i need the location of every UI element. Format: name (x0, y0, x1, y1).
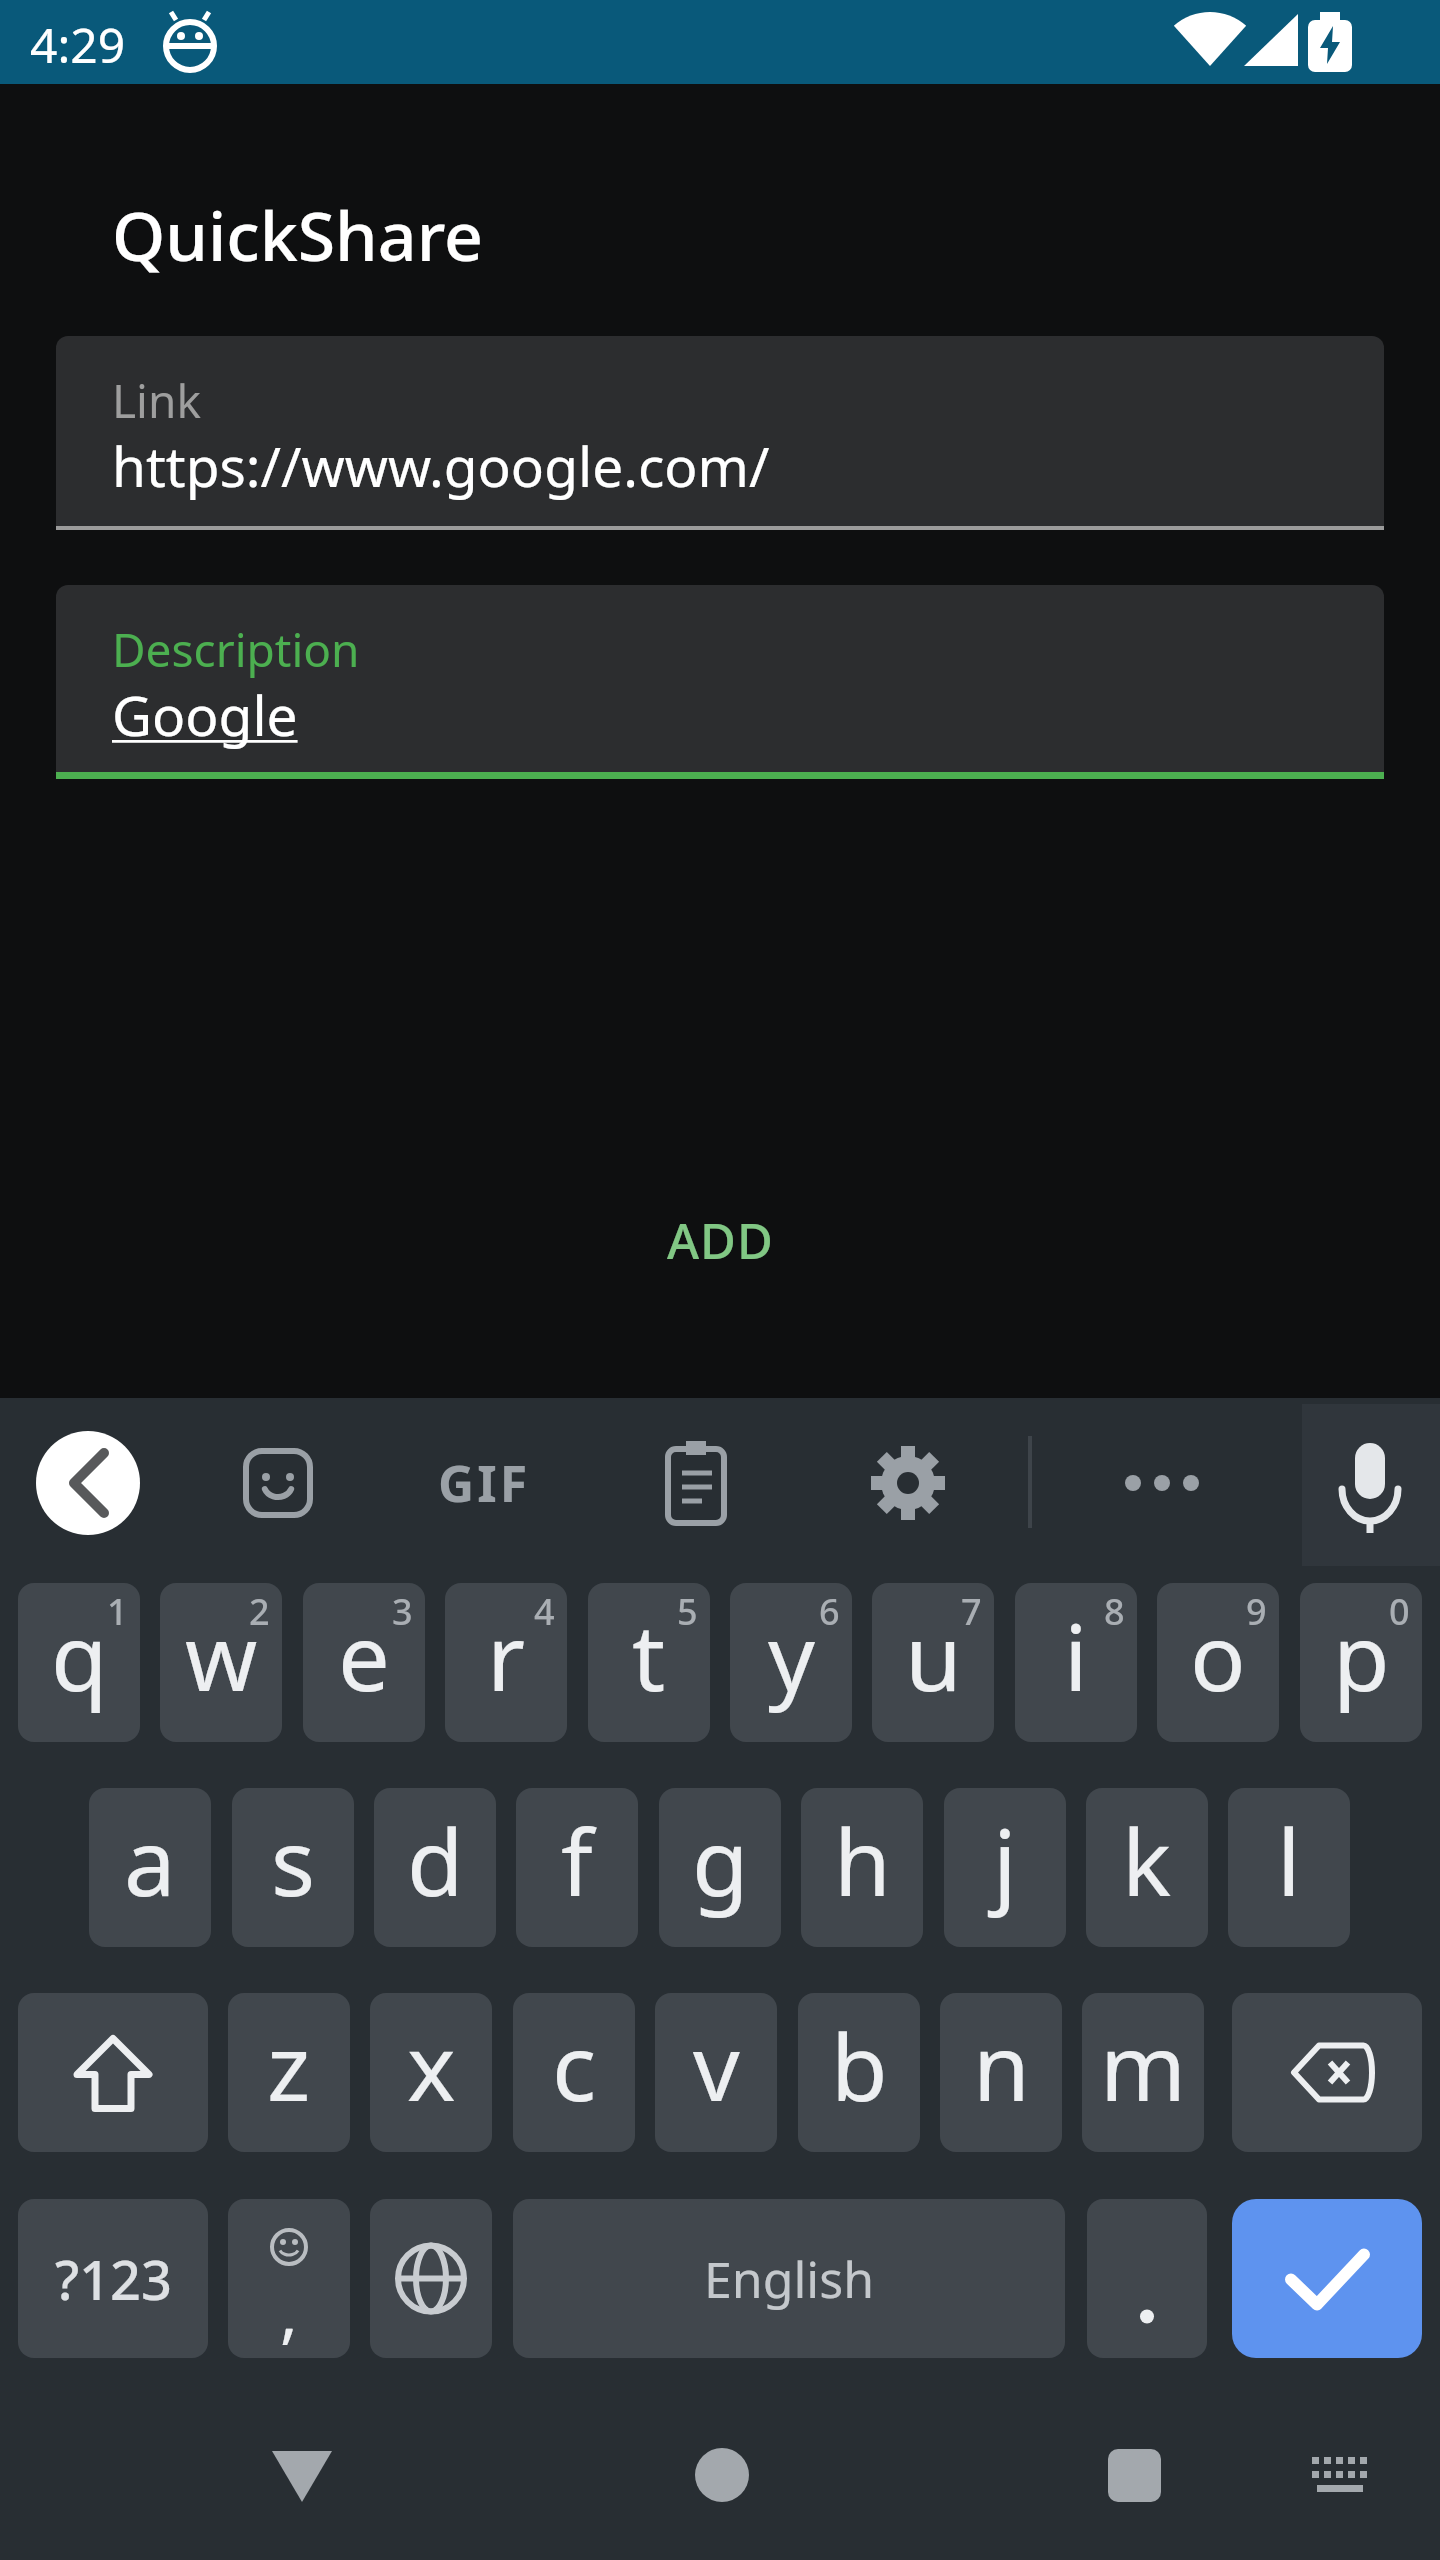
button[interactable]: ADD (570, 1190, 870, 1290)
button[interactable]: v (655, 1993, 777, 2152)
staticText: GIF (438, 1449, 531, 1517)
button[interactable] (18, 1993, 208, 2152)
staticText: 0 (1389, 1587, 1410, 1636)
button[interactable]: i (1015, 1583, 1137, 1742)
staticText: n (973, 2003, 1030, 2128)
button[interactable]: d (374, 1788, 496, 1947)
button[interactable] (1318, 1431, 1422, 1535)
staticText: g (692, 1798, 749, 1923)
button[interactable]: b (798, 1993, 920, 2152)
button[interactable] (36, 1431, 140, 1535)
button[interactable]: x (370, 1993, 492, 2152)
button[interactable]: f (516, 1788, 638, 1947)
staticText: 8 (1104, 1587, 1125, 1636)
staticText: p (1333, 1593, 1390, 1718)
button[interactable]: g (659, 1788, 781, 1947)
staticText: d (407, 1798, 464, 1923)
button[interactable] (0, 2395, 480, 2560)
staticText: e (338, 1593, 390, 1718)
staticText: f (561, 1798, 593, 1923)
button[interactable] (1232, 1993, 1422, 2152)
staticText: 6 (819, 1587, 840, 1636)
staticText: , (280, 2266, 298, 2356)
staticText: QuickShare (112, 188, 484, 281)
staticText: s (271, 1798, 316, 1923)
button[interactable]: ?123 (18, 2199, 208, 2358)
button[interactable]: Description (56, 585, 1384, 779)
staticText: ADD (667, 1207, 774, 1274)
button[interactable]: n (940, 1993, 1062, 2152)
button[interactable]: Link (56, 336, 1384, 530)
button[interactable]: z (228, 1993, 350, 2152)
button[interactable]: u (872, 1583, 994, 1742)
button[interactable] (856, 1431, 960, 1535)
staticText: a (124, 1798, 176, 1923)
button[interactable]: e (303, 1583, 425, 1742)
button[interactable]: s (232, 1788, 354, 1947)
button[interactable]: , (228, 2199, 350, 2358)
staticText: m (1100, 2003, 1187, 2128)
staticText: y (768, 1593, 815, 1718)
button[interactable] (644, 1431, 748, 1535)
staticText: h (834, 1798, 891, 1923)
button[interactable]: r (445, 1583, 567, 1742)
staticText: 7 (961, 1587, 982, 1636)
staticText: x (407, 2003, 456, 2128)
button[interactable]: p (1300, 1583, 1422, 1742)
button[interactable] (960, 2395, 1440, 2560)
button[interactable] (1110, 1431, 1214, 1535)
staticText: o (1190, 1593, 1246, 1718)
button[interactable]: m (1082, 1993, 1204, 2152)
button[interactable]: k (1086, 1788, 1208, 1947)
button[interactable]: l (1228, 1788, 1350, 1947)
button[interactable] (226, 1431, 330, 1535)
button[interactable]: o (1157, 1583, 1279, 1742)
staticText: ?123 (55, 2242, 172, 2316)
staticText: 5 (677, 1587, 698, 1636)
button[interactable] (1232, 2199, 1422, 2358)
staticText: English (704, 2245, 875, 2313)
button[interactable] (480, 2395, 960, 2560)
staticText: z (267, 2003, 311, 2128)
button[interactable]: English (513, 2199, 1065, 2358)
staticText: 4:29 (30, 12, 126, 77)
staticText: u (905, 1593, 962, 1718)
staticText: https://www.google.com/ (112, 428, 770, 503)
staticText: b (831, 2003, 888, 2128)
staticText: 4 (534, 1587, 555, 1636)
staticText: 1 (107, 1587, 128, 1636)
staticText: k (1122, 1798, 1172, 1923)
button[interactable]: y (730, 1583, 852, 1742)
button[interactable]: GIF (416, 1431, 552, 1535)
button[interactable]: w (160, 1583, 282, 1742)
button[interactable]: t (588, 1583, 710, 1742)
staticText: t (632, 1593, 666, 1718)
staticText: Google (112, 677, 298, 752)
button[interactable]: q (18, 1583, 140, 1742)
staticText: Link (112, 369, 201, 432)
staticText: r (487, 1593, 525, 1718)
staticText: w (185, 1593, 258, 1718)
staticText: 9 (1246, 1587, 1267, 1636)
staticText: v (693, 2003, 740, 2128)
staticText: c (552, 2003, 597, 2128)
button[interactable]: a (89, 1788, 211, 1947)
staticText: j (993, 1798, 1017, 1923)
button[interactable]: c (513, 1993, 635, 2152)
button[interactable] (1087, 2199, 1207, 2358)
staticText: Description (112, 618, 360, 681)
staticText: i (1064, 1593, 1088, 1718)
button[interactable] (370, 2199, 492, 2358)
staticText: 3 (392, 1587, 413, 1636)
button[interactable]: h (801, 1788, 923, 1947)
staticText: q (51, 1593, 108, 1718)
staticText: l (1277, 1798, 1301, 1923)
button[interactable]: j (944, 1788, 1066, 1947)
staticText: 2 (249, 1587, 270, 1636)
